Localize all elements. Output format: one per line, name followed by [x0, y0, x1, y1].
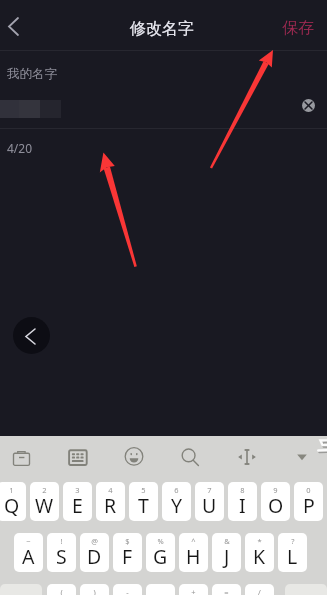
staticText: H: [186, 543, 201, 570]
staticText: G: [153, 543, 168, 570]
button[interactable]: &: [212, 533, 241, 572]
staticText: J: [224, 543, 230, 570]
staticText: P: [303, 492, 315, 519]
button[interactable]: *: [245, 533, 274, 572]
staticText: T: [138, 492, 149, 519]
button[interactable]: /: [245, 584, 274, 595]
staticText: $: [125, 536, 130, 546]
staticText: M: [251, 594, 269, 595]
button[interactable]: 5: [129, 482, 158, 521]
staticText: Q: [4, 492, 20, 519]
staticText: 4/20: [7, 140, 33, 156]
button[interactable]: Emoji: [113, 435, 155, 477]
staticText: I: [239, 492, 246, 519]
button[interactable]: 8: [228, 482, 257, 521]
button[interactable]: ?: [278, 533, 307, 572]
staticText: 6: [174, 485, 179, 495]
staticText: 我的名字: [7, 66, 57, 82]
staticText: X: [89, 594, 101, 595]
button[interactable]: 6: [162, 482, 191, 521]
button[interactable]: !: [47, 533, 76, 572]
staticText: O: [268, 492, 284, 519]
button[interactable]: 0: [294, 482, 323, 521]
button[interactable]: 3: [63, 482, 92, 521]
staticText: E: [72, 492, 83, 519]
staticText: 3: [75, 485, 80, 495]
button[interactable]: $: [113, 533, 142, 572]
staticText: &: [224, 536, 230, 546]
staticText: 保存: [282, 18, 314, 38]
button[interactable]: Keyboard layout: [57, 436, 99, 478]
staticText: -: [126, 587, 129, 595]
button[interactable]: 2: [30, 482, 59, 521]
button[interactable]: Clipboard: [0, 436, 42, 478]
staticText: D: [87, 543, 102, 570]
button[interactable]: 7: [195, 482, 224, 521]
button[interactable]: ~: [14, 533, 43, 572]
staticText: =: [224, 587, 229, 595]
staticText: @: [91, 536, 98, 546]
staticText: *: [257, 536, 262, 546]
staticText: %: [157, 536, 164, 546]
staticText: ): [93, 587, 96, 595]
staticText: +: [191, 587, 196, 595]
staticText: R: [104, 492, 117, 519]
staticText: 1: [9, 485, 14, 495]
button[interactable]: 1: [0, 482, 26, 521]
button[interactable]: Clear text: [297, 94, 320, 117]
staticText: 2: [42, 485, 47, 495]
staticText: 0: [306, 485, 311, 495]
staticText: ~: [26, 536, 31, 546]
staticText: S: [56, 543, 67, 570]
button[interactable]: ^: [179, 533, 208, 572]
staticText: Z: [56, 594, 68, 595]
staticText: 7: [207, 485, 212, 495]
staticText: L: [287, 543, 298, 570]
button[interactable]: @: [80, 533, 109, 572]
button[interactable]: Search: [169, 436, 211, 478]
staticText: F: [122, 543, 133, 570]
button[interactable]: %: [146, 533, 175, 572]
staticText: 修改名字: [130, 19, 194, 39]
button[interactable]: 保存: [269, 8, 327, 44]
button[interactable]: ): [80, 584, 109, 595]
button[interactable]: -: [113, 584, 142, 595]
button[interactable]: Back: [0, 4, 44, 48]
staticText: K: [253, 543, 266, 570]
button[interactable]: _: [146, 584, 175, 595]
button[interactable]: 9: [261, 482, 290, 521]
button[interactable]: =: [212, 584, 241, 595]
staticText: 5: [141, 485, 146, 495]
staticText: /: [258, 587, 261, 595]
staticText: (: [60, 587, 63, 595]
button[interactable]: 4: [96, 482, 125, 521]
button[interactable]: Move cursor: [226, 436, 268, 478]
staticText: 4: [108, 485, 113, 495]
staticText: A: [22, 543, 35, 570]
button[interactable]: Hide keyboard: [281, 436, 323, 478]
staticText: W: [35, 492, 54, 519]
staticText: 8: [240, 485, 245, 495]
staticText: ^: [191, 536, 196, 546]
button[interactable]: +: [179, 584, 208, 595]
staticText: ?: [291, 536, 295, 546]
staticText: 9: [273, 485, 278, 495]
staticText: !: [60, 536, 63, 546]
staticText: U: [202, 492, 217, 519]
button[interactable]: Go back: [13, 317, 50, 354]
button[interactable]: (: [47, 584, 76, 595]
staticText: Y: [171, 492, 183, 519]
